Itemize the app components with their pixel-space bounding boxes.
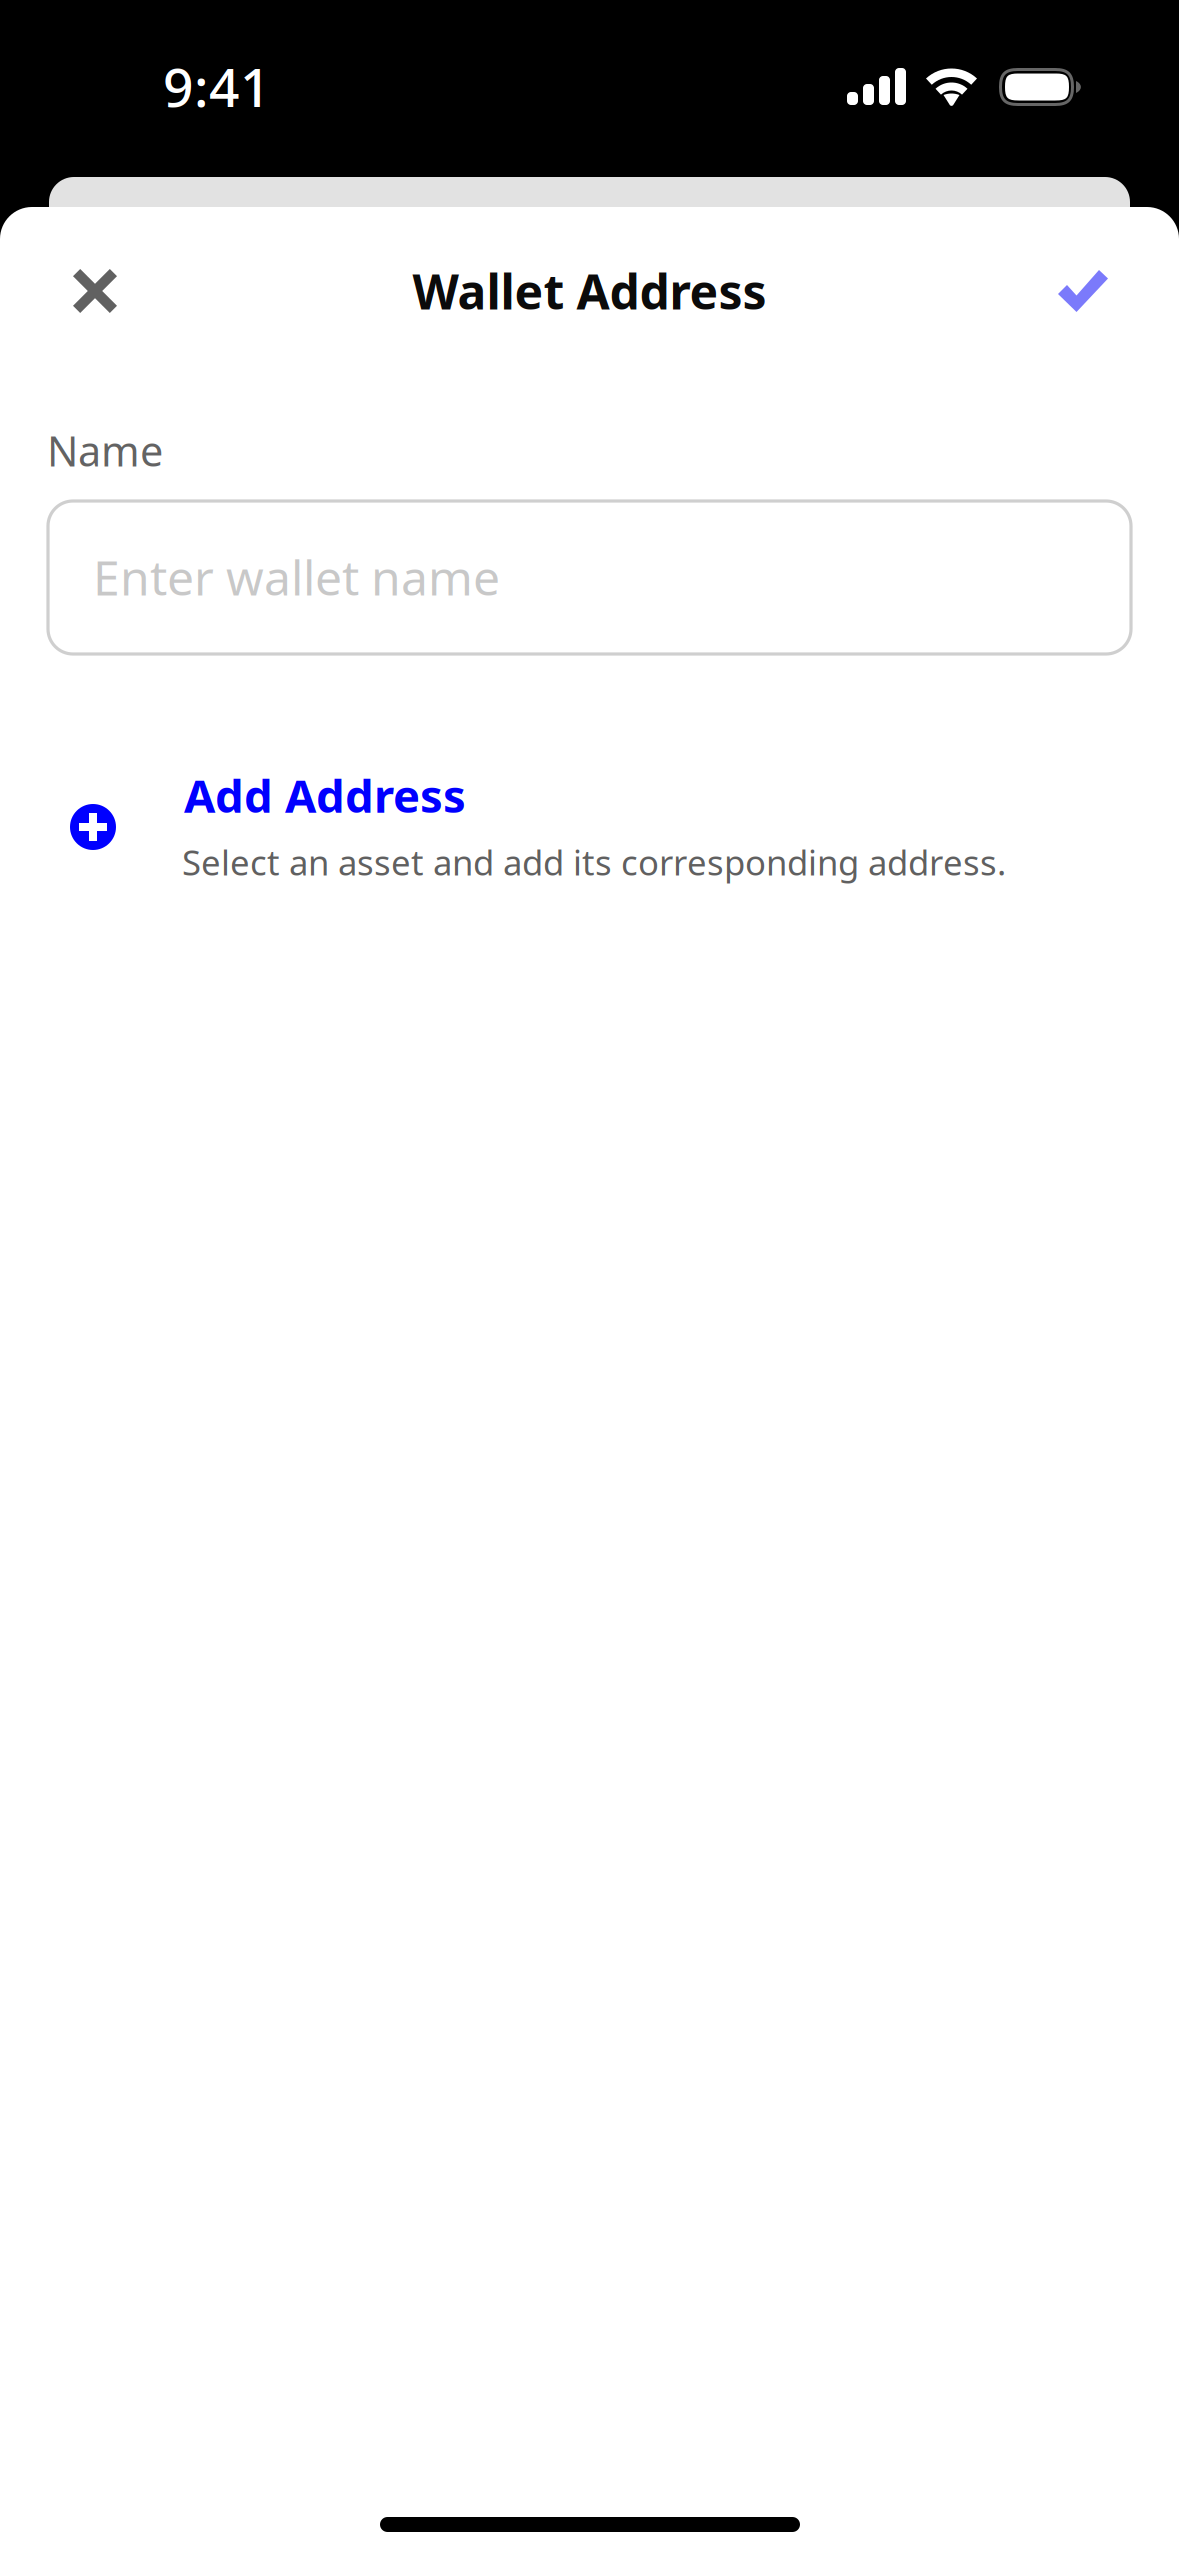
button[interactable]: Close bbox=[35, 236, 155, 346]
staticText: Select an asset and add its correspondin… bbox=[182, 839, 1006, 885]
staticText: Name bbox=[47, 423, 163, 478]
staticText: Enter wallet name bbox=[93, 545, 500, 609]
button[interactable]: Done bbox=[1023, 236, 1143, 346]
staticText: 9:41 bbox=[163, 51, 271, 122]
staticText: Add Address bbox=[184, 765, 466, 825]
button[interactable]: Add Address bbox=[0, 0, 1179, 2556]
staticText: Wallet Address bbox=[412, 259, 766, 323]
